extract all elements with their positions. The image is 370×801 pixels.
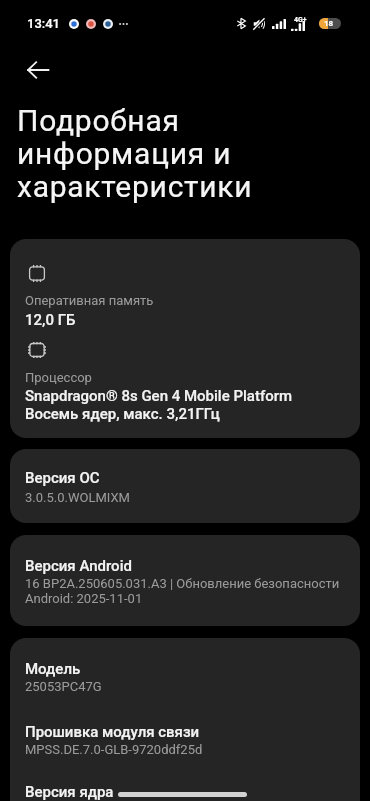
staticText: Процессор — [25, 370, 92, 385]
staticText: Подробная информация и характеристики — [17, 103, 270, 204]
staticText: Оперативная память — [25, 293, 154, 308]
button[interactable]: Версия ОС — [10, 449, 360, 523]
staticText: Snapdragon® 8s Gen 4 Mobile Platform Вос… — [25, 387, 293, 423]
staticText: Прошивка модуля связи — [25, 723, 200, 741]
staticText: Версия ядра — [25, 783, 114, 801]
staticText: 4G+ — [294, 16, 307, 24]
staticText: 18 — [324, 19, 334, 28]
button[interactable]: Модель — [10, 638, 360, 801]
staticText: MPSS.DE.7.0-GLB-9720ddf25d — [25, 742, 203, 757]
staticText: Модель — [25, 660, 81, 678]
staticText: 12,0 ГБ — [25, 311, 76, 329]
staticText: 3.0.5.0.WOLMIXM — [25, 490, 130, 505]
button[interactable]: Версия Android — [10, 535, 360, 626]
button[interactable]: Оперативная память — [10, 239, 360, 438]
staticText: 16 BP2A.250605.031.A3 | Обновление безоп… — [25, 576, 340, 606]
button[interactable]: Назад — [14, 46, 61, 93]
staticText: 13:41 — [27, 16, 60, 31]
staticText: 25053PC47G — [25, 679, 102, 694]
staticText: Версия ОС — [25, 469, 100, 487]
staticText: Версия Android — [25, 557, 132, 575]
